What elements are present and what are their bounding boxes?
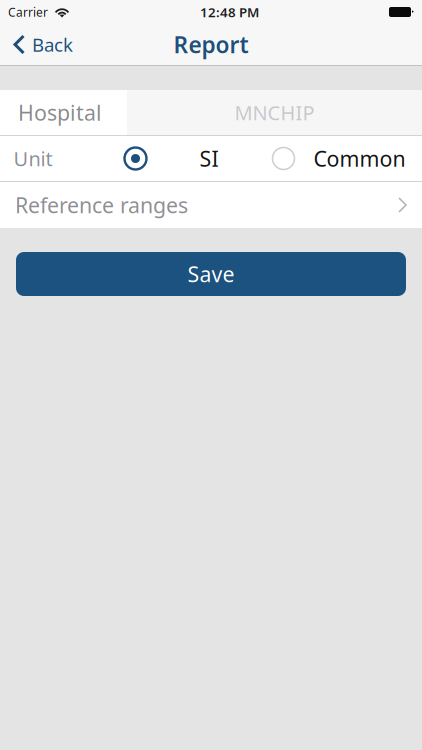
staticText: Carrier [8,4,48,20]
button[interactable]: Save [16,252,406,296]
staticText: Back [32,32,73,57]
button[interactable]: Hospital [0,90,127,135]
staticText: MNCHIP [234,99,314,126]
staticText: Report [173,29,248,59]
button[interactable]: MNCHIP [127,90,422,135]
button[interactable]: Common [272,136,415,181]
button[interactable]: Reference ranges [0,182,422,228]
staticText: Hospital [18,98,102,127]
button[interactable]: SI [124,136,272,181]
staticText: Reference ranges [15,191,188,219]
staticText: Unit [13,145,52,172]
staticText: Save [187,260,234,288]
button[interactable]: Back [0,24,85,65]
staticText: Common [313,144,405,173]
staticText: SI [199,144,218,173]
staticText: 12:48 PM [200,3,259,21]
